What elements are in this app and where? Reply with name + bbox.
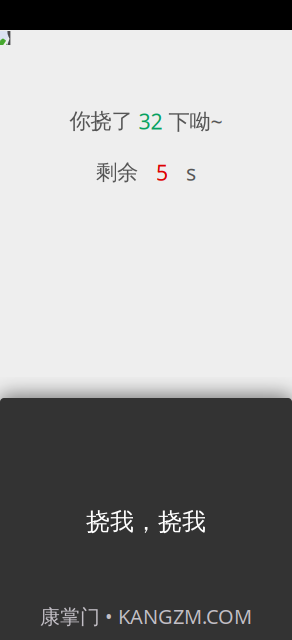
staticText: 5: [156, 158, 168, 187]
staticText: 挠我，挠我: [86, 507, 206, 536]
staticText: 下呦~: [162, 107, 222, 135]
staticText: s: [168, 158, 196, 187]
staticText: 康掌门 • KANGZM.COM: [40, 603, 252, 630]
button[interactable]: 挠我，挠我: [0, 398, 292, 640]
staticText: 32: [138, 107, 162, 135]
staticText: 你挠了: [69, 108, 138, 134]
staticText: 剩余: [96, 159, 156, 186]
